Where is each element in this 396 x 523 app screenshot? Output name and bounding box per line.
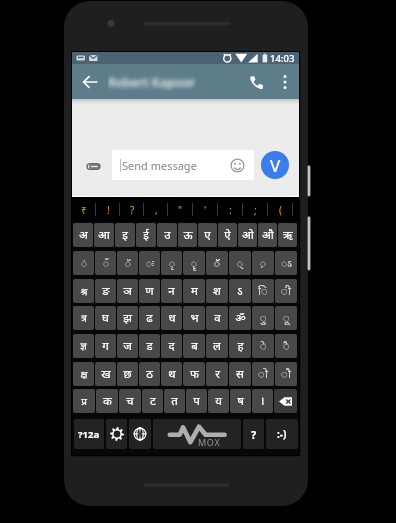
button[interactable]: फ <box>183 362 205 386</box>
button[interactable]: ऽ <box>229 279 251 303</box>
button[interactable]: द <box>161 334 182 358</box>
button[interactable]: ◌ी <box>275 279 297 303</box>
button[interactable]: Insert emoji <box>228 156 246 174</box>
button[interactable]: थ <box>161 362 182 386</box>
button[interactable]: म <box>183 279 205 303</box>
button[interactable]: प्र <box>73 389 95 413</box>
button[interactable]: श <box>206 279 228 303</box>
button[interactable]: ! <box>96 197 120 222</box>
button[interactable]: Send <box>261 151 289 179</box>
button[interactable]: ण <box>139 279 160 303</box>
button[interactable]: ॐ <box>229 306 251 330</box>
button[interactable]: च <box>119 389 141 413</box>
button[interactable]: Attach file <box>81 154 105 178</box>
button[interactable]: त्र <box>73 306 94 330</box>
button[interactable]: ट <box>142 389 163 413</box>
button[interactable]: ध <box>161 306 182 330</box>
button[interactable]: ◌ृ <box>161 251 182 275</box>
button[interactable]: ◌ौ <box>275 362 297 386</box>
button[interactable]: ठ <box>139 362 160 386</box>
button[interactable]: ◌ै <box>275 334 297 358</box>
button[interactable]: Call <box>240 64 272 100</box>
button[interactable]: ब <box>183 334 205 358</box>
button[interactable]: आ <box>94 223 114 247</box>
button[interactable]: :-) <box>266 419 298 449</box>
button[interactable]: ज <box>117 334 138 358</box>
button[interactable]: ष <box>230 389 251 413</box>
button[interactable]: । <box>252 389 273 413</box>
button[interactable]: ख <box>95 362 116 386</box>
button[interactable]: ◌े <box>252 334 274 358</box>
button[interactable]: ? <box>243 419 264 449</box>
staticText: ष <box>237 393 244 409</box>
button[interactable]: ' <box>193 197 218 222</box>
button[interactable]: त <box>164 389 185 413</box>
button[interactable]: ङ <box>95 279 116 303</box>
button[interactable]: प <box>186 389 207 413</box>
button[interactable]: ह <box>229 334 251 358</box>
button[interactable]: ओ <box>238 223 257 247</box>
staticText: श <box>213 283 221 299</box>
button[interactable]: ( <box>268 197 293 222</box>
staticText: त्र <box>81 311 87 325</box>
button[interactable]: घ <box>95 306 116 330</box>
button[interactable]: क <box>96 389 118 413</box>
staticText: ख <box>101 366 111 382</box>
button[interactable]: Backspace <box>274 389 297 413</box>
button[interactable]: ₹ <box>72 197 96 222</box>
button[interactable]: व <box>206 306 228 330</box>
button[interactable]: Send message <box>112 150 254 180</box>
button[interactable]: ड <box>139 334 160 358</box>
button[interactable]: झ <box>117 306 138 330</box>
button[interactable]: ◌ँ <box>95 251 116 275</box>
button[interactable]: Back <box>72 64 108 100</box>
button[interactable]: ◌ॄ <box>183 251 205 275</box>
button[interactable]: ग <box>95 334 116 358</box>
button[interactable]: इ <box>115 223 135 247</box>
button[interactable]: , <box>144 197 168 222</box>
button[interactable]: ◌ं <box>73 251 94 275</box>
button[interactable]: भ <box>183 306 205 330</box>
button[interactable]: ऋ <box>278 223 297 247</box>
button[interactable]: " <box>168 197 193 222</box>
button[interactable]: ◌् <box>229 251 251 275</box>
button[interactable]: ◌ो <box>252 362 274 386</box>
button[interactable]: ◌़ <box>252 251 274 275</box>
button[interactable]: उ <box>157 223 177 247</box>
button[interactable]: अ <box>73 223 93 247</box>
button[interactable]: ए <box>198 223 217 247</box>
button[interactable]: ◌ि <box>252 279 274 303</box>
button[interactable]: औ <box>258 223 277 247</box>
button[interactable]: Robert Kapoor <box>108 64 196 100</box>
button[interactable]: ढ <box>139 306 160 330</box>
button[interactable]: Space <box>153 419 241 449</box>
button[interactable]: ज्ञ <box>73 334 94 358</box>
button[interactable]: More options <box>272 64 298 100</box>
button[interactable]: ◌ु <box>252 306 274 330</box>
button[interactable]: Settings <box>106 419 127 449</box>
button[interactable]: ऊ <box>178 223 197 247</box>
button[interactable]: छ <box>117 362 138 386</box>
button[interactable]: ॅ <box>206 251 228 275</box>
button[interactable]: ? <box>120 197 144 222</box>
button[interactable]: क्ष <box>73 362 94 386</box>
staticText: ◌ः <box>146 256 154 270</box>
button[interactable]: ल <box>206 334 228 358</box>
button[interactable]: ; <box>243 197 268 222</box>
button[interactable]: ◌ू <box>275 306 297 330</box>
button[interactable]: Change language <box>129 419 151 449</box>
button[interactable]: र <box>206 362 228 386</box>
button[interactable]: स <box>229 362 251 386</box>
button[interactable]: ञ <box>117 279 138 303</box>
button[interactable]: न <box>161 279 182 303</box>
button[interactable]: ◌ः <box>139 251 160 275</box>
button[interactable]: ई <box>136 223 156 247</box>
button[interactable]: ऐ <box>218 223 237 247</box>
button[interactable]: य <box>208 389 229 413</box>
button[interactable]: : <box>218 197 243 222</box>
button[interactable]: ?12a <box>74 419 104 449</box>
button[interactable]: श्र <box>73 279 94 303</box>
staticText: ?12a <box>78 428 100 441</box>
button[interactable]: ◌ॅ <box>117 251 138 275</box>
button[interactable]: ◌ऽ <box>275 251 297 275</box>
